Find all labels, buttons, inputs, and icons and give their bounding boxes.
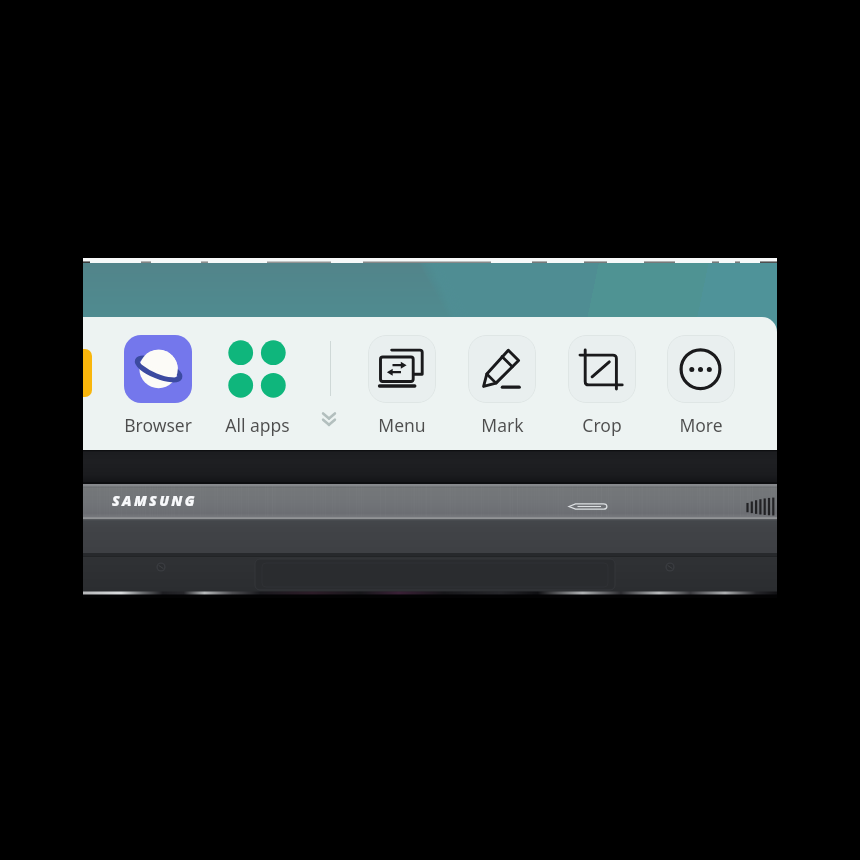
staticText: Mark: [481, 413, 524, 437]
staticText: Crop: [582, 413, 622, 437]
button[interactable]: Expand toolbar: [315, 404, 343, 432]
button[interactable]: More: [656, 335, 746, 437]
staticText: More: [679, 413, 723, 437]
staticText: Browser: [124, 413, 192, 437]
button[interactable]: Mark: [457, 335, 547, 437]
button[interactable]: All apps: [212, 335, 302, 437]
staticText: All apps: [225, 413, 290, 437]
button[interactable]: Browser: [113, 335, 203, 437]
staticText: Menu: [378, 413, 426, 437]
button[interactable]: Crop: [557, 335, 647, 437]
button[interactable]: Menu: [357, 335, 447, 437]
staticText: SAMSUNG: [112, 491, 197, 510]
